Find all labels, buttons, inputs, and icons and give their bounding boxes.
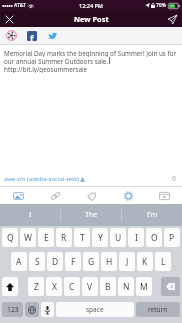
button[interactable]: S <box>29 252 45 271</box>
staticText: The <box>85 210 98 220</box>
button[interactable]: Delete <box>161 277 180 296</box>
staticText: J <box>126 256 129 268</box>
button[interactable]: J <box>119 252 135 271</box>
button[interactable]: X <box>46 277 62 296</box>
staticText: f <box>30 32 34 41</box>
button[interactable]: M <box>136 277 152 296</box>
staticText: C <box>69 281 75 293</box>
staticText: V <box>87 281 93 293</box>
staticText: I <box>29 210 32 220</box>
button[interactable]: Dictation <box>41 302 54 317</box>
staticText: W <box>24 232 32 244</box>
button[interactable]: Z <box>28 277 44 296</box>
staticText: Z <box>34 281 39 293</box>
staticText: Y <box>98 232 103 244</box>
button[interactable]: Settings <box>110 187 146 204</box>
button[interactable]: W <box>20 228 36 247</box>
staticText: X <box>52 281 57 293</box>
staticText: L <box>161 256 166 268</box>
button[interactable]: I <box>0 204 60 226</box>
staticText: Q <box>7 232 14 244</box>
button[interactable]: D <box>47 252 63 271</box>
staticText: U <box>115 232 122 244</box>
button[interactable]: B <box>100 277 116 296</box>
staticText: I <box>135 232 138 244</box>
button[interactable]: Twitter <box>42 27 63 44</box>
staticText: awe.sm (adobe-social-test) ▲ <box>4 175 85 183</box>
staticText: 12:24 PM <box>79 2 103 9</box>
button[interactable]: E <box>38 228 54 247</box>
staticText: space <box>86 305 104 314</box>
staticText: A <box>16 256 22 268</box>
button[interactable]: O <box>146 228 162 247</box>
staticText: return <box>148 305 168 314</box>
button[interactable]: I <box>128 228 144 247</box>
button[interactable]: U <box>110 228 126 247</box>
staticText: T <box>80 232 85 244</box>
button[interactable]: Add link <box>37 187 74 204</box>
button[interactable]: I'm <box>122 204 182 226</box>
button[interactable]: The <box>61 204 121 226</box>
button[interactable]: Change keyboard <box>25 302 39 317</box>
button[interactable]: return <box>136 302 180 317</box>
staticText: R <box>61 232 67 244</box>
button[interactable]: G <box>83 252 99 271</box>
button[interactable]: space <box>56 302 134 317</box>
button[interactable]: P <box>164 228 180 247</box>
staticText: Memorial Day marks the beginning of Summ… <box>4 49 177 57</box>
button[interactable]: T <box>74 228 90 247</box>
staticText: I'm <box>147 210 158 220</box>
button[interactable]: C <box>64 277 80 296</box>
button[interactable]: N <box>118 277 134 296</box>
staticText: AT&T <box>14 2 26 9</box>
staticText: F <box>71 256 76 268</box>
staticText: N <box>123 281 130 293</box>
button[interactable]: Send <box>162 11 182 27</box>
button[interactable]: Schedule <box>146 187 182 204</box>
button[interactable]: L <box>155 252 171 271</box>
button[interactable]: H <box>101 252 117 271</box>
staticText: 6 <box>172 174 177 184</box>
button[interactable]: Q <box>2 228 18 247</box>
button[interactable]: Close <box>0 11 19 27</box>
button[interactable]: Facebook <box>22 27 42 44</box>
button[interactable]: awe.sm (adobe-social-test) ▲ <box>4 175 85 183</box>
staticText: O <box>151 232 158 244</box>
staticText: M <box>140 281 148 293</box>
staticText: G <box>88 256 95 268</box>
staticText: S <box>35 256 40 268</box>
staticText: New Post <box>74 14 109 24</box>
button[interactable]: A <box>11 252 27 271</box>
button[interactable]: K <box>137 252 153 271</box>
button[interactable]: V <box>82 277 98 296</box>
staticText: 70% <box>156 2 166 9</box>
staticText: P <box>169 232 175 244</box>
staticText: D <box>52 256 59 268</box>
button[interactable]: Numbers <box>2 302 23 317</box>
button[interactable]: Add image <box>0 187 37 204</box>
staticText: our annual Summer Outdoors sale. <box>4 57 109 65</box>
button[interactable]: Shift <box>2 277 18 296</box>
button[interactable]: Share network <box>0 27 22 44</box>
staticText: E <box>44 232 49 244</box>
staticText: H <box>106 256 113 268</box>
staticText: B <box>105 281 111 293</box>
button[interactable]: R <box>56 228 72 247</box>
staticText: K <box>142 256 148 268</box>
button[interactable]: F <box>65 252 81 271</box>
staticText: http://bit.ly/geosummersale <box>4 65 88 73</box>
button[interactable]: Y <box>92 228 108 247</box>
staticText: 123 <box>7 305 19 314</box>
button[interactable]: Add tag <box>74 187 110 204</box>
